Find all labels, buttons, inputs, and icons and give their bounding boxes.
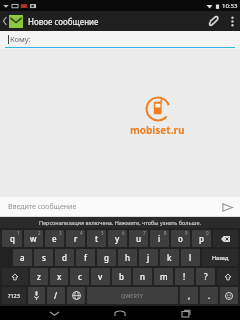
button[interactable]: 7 <box>129 230 148 247</box>
button[interactable]: Backspace <box>213 230 238 247</box>
staticText: y <box>115 233 120 244</box>
button[interactable]: v <box>91 268 110 285</box>
staticText: e <box>52 233 57 244</box>
button[interactable]: QWERTY <box>87 287 178 304</box>
button[interactable]: Кому: <box>0 31 240 47</box>
button[interactable]: / <box>47 287 65 304</box>
staticText: q <box>10 233 15 244</box>
button[interactable]: Back <box>0 11 26 31</box>
staticText: 9 <box>185 230 188 236</box>
button[interactable]: ! <box>175 268 194 285</box>
button[interactable]: 3 <box>45 230 64 247</box>
staticText: Персонализация включена. Нажмите, чтобы … <box>39 219 201 226</box>
staticText: g <box>104 252 109 263</box>
button[interactable]: Hide keyboard <box>42 306 66 320</box>
button[interactable]: 0 <box>192 230 211 247</box>
staticText: h <box>125 252 131 263</box>
staticText: 6 <box>122 230 125 236</box>
button[interactable]: m <box>154 268 173 285</box>
staticText: Назад <box>212 254 229 261</box>
staticText: x <box>57 271 62 282</box>
staticText: o <box>178 233 183 244</box>
staticText: ? <box>204 271 208 282</box>
button[interactable]: Назад <box>202 249 238 266</box>
staticText: 7 <box>143 230 146 236</box>
button[interactable]: b <box>112 268 131 285</box>
button[interactable]: f <box>76 249 95 266</box>
staticText: f <box>84 252 87 263</box>
staticText: 2 <box>38 230 41 236</box>
staticText: n <box>140 271 146 282</box>
staticText: m <box>160 271 168 282</box>
button[interactable]: z <box>30 268 48 285</box>
button[interactable]: n <box>133 268 152 285</box>
staticText: i <box>158 233 161 244</box>
button[interactable]: d <box>55 249 74 266</box>
staticText: ?123 <box>8 292 20 299</box>
staticText: 5 <box>101 230 104 236</box>
staticText: k <box>167 252 172 263</box>
staticText: . <box>208 290 211 301</box>
staticText: u <box>136 233 142 244</box>
button[interactable]: 9 <box>171 230 190 247</box>
button[interactable]: 1 <box>2 230 22 247</box>
staticText: Введите сообщение <box>8 202 77 212</box>
staticText: mobiset.ru <box>130 123 185 137</box>
staticText: QWERTY <box>121 292 144 299</box>
button[interactable]: a <box>13 249 32 266</box>
button[interactable]: More options <box>224 11 240 31</box>
button[interactable]: 6 <box>108 230 127 247</box>
staticText: a <box>20 252 25 263</box>
staticText: 10:53 <box>222 2 238 10</box>
button[interactable]: 5 <box>87 230 106 247</box>
button[interactable]: ? <box>196 268 215 285</box>
staticText: d <box>62 252 67 263</box>
button[interactable]: Voice input <box>28 287 45 304</box>
button[interactable]: 8 <box>150 230 169 247</box>
button[interactable]: Shift <box>2 268 28 285</box>
staticText: ! <box>183 271 186 282</box>
button[interactable]: x <box>50 268 68 285</box>
button[interactable]: Recent apps <box>174 306 198 320</box>
button[interactable]: c <box>70 268 89 285</box>
button[interactable]: ?123 <box>2 287 26 304</box>
staticText: l <box>189 252 192 263</box>
staticText: 4 <box>80 230 83 236</box>
staticText: b <box>119 271 124 282</box>
button[interactable]: Home <box>108 306 132 320</box>
button[interactable]: Персонализация включена. Нажмите, чтобы … <box>0 217 240 228</box>
button[interactable]: Attach <box>202 11 224 31</box>
staticText: w <box>30 233 37 244</box>
button[interactable]: 4 <box>66 230 85 247</box>
button[interactable]: s <box>34 249 53 266</box>
staticText: r <box>74 233 78 244</box>
staticText: p <box>199 233 204 244</box>
button[interactable]: , <box>180 287 198 304</box>
staticText: s <box>42 252 46 263</box>
button[interactable]: Shift <box>217 268 238 285</box>
staticText: 0 <box>206 230 209 236</box>
staticText: c <box>78 271 82 282</box>
staticText: v <box>98 271 103 282</box>
staticText: , <box>188 290 191 301</box>
button[interactable]: 2 <box>24 230 43 247</box>
staticText: Новое сообщение <box>28 16 99 27</box>
button[interactable]: h <box>118 249 137 266</box>
button[interactable]: l <box>181 249 200 266</box>
button[interactable]: Emoji <box>220 287 238 304</box>
staticText: 8 <box>164 230 167 236</box>
button[interactable]: . <box>200 287 218 304</box>
staticText: 3 <box>59 230 62 236</box>
staticText: Кому: <box>10 34 31 44</box>
button[interactable]: Change language <box>67 287 85 304</box>
staticText: t <box>95 233 99 244</box>
staticText: j <box>147 252 150 263</box>
button[interactable]: g <box>97 249 116 266</box>
button[interactable]: k <box>160 249 179 266</box>
button[interactable]: j <box>139 249 158 266</box>
staticText: z <box>37 271 41 282</box>
staticText: 1 <box>17 230 20 236</box>
staticText: / <box>54 290 58 301</box>
button[interactable]: Send <box>214 197 240 217</box>
